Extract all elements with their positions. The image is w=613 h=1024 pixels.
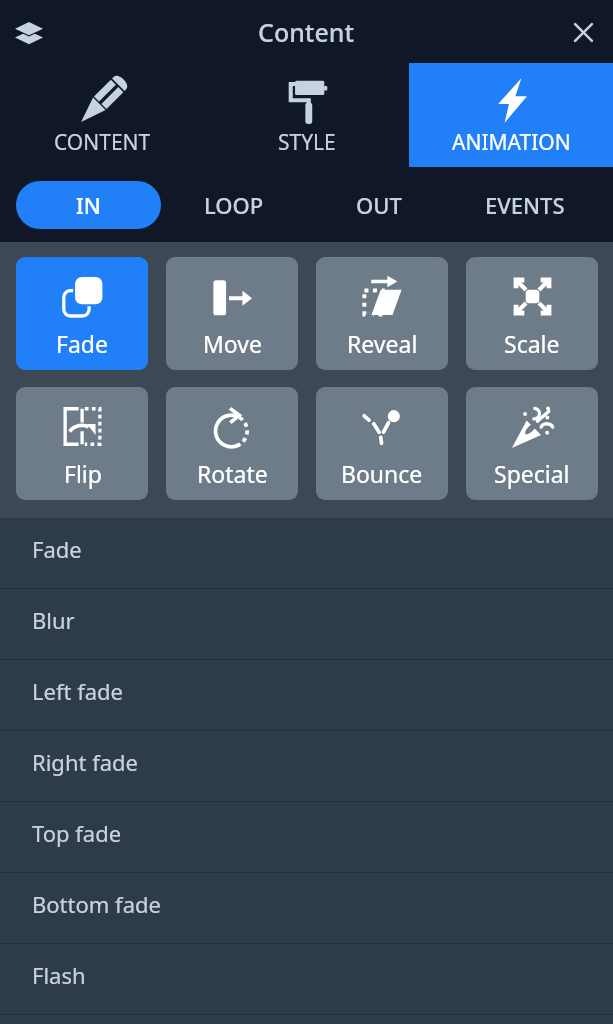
button[interactable]: Left fade: [0, 660, 613, 730]
staticText: Flash: [32, 960, 86, 990]
staticText: Rotate: [197, 458, 268, 489]
staticText: Fade: [56, 328, 108, 359]
button[interactable]: Flip: [16, 387, 148, 500]
staticText: Right fade: [32, 747, 138, 777]
staticText: Scale: [504, 328, 560, 359]
button[interactable]: IN: [16, 181, 161, 229]
button[interactable]: Scale: [466, 257, 598, 370]
staticText: IN: [76, 190, 101, 220]
staticText: OUT: [356, 190, 402, 220]
staticText: Special: [494, 458, 570, 489]
staticText: EVENTS: [485, 190, 565, 220]
staticText: Left fade: [32, 676, 124, 706]
staticText: STYLE: [278, 128, 336, 157]
button[interactable]: Layers: [5, 8, 53, 56]
button[interactable]: LOOP: [161, 181, 306, 229]
button[interactable]: Move: [166, 257, 298, 370]
button[interactable]: Blur: [0, 589, 613, 659]
button[interactable]: STYLE: [205, 63, 409, 167]
button[interactable]: Close: [559, 8, 607, 56]
staticText: LOOP: [204, 190, 264, 220]
staticText: Bounce: [341, 458, 423, 489]
button[interactable]: Bottom fade: [0, 873, 613, 943]
button[interactable]: Rotate: [166, 387, 298, 500]
staticText: Flip: [64, 458, 102, 489]
staticText: Bottom fade: [32, 889, 161, 919]
staticText: Blur: [32, 605, 75, 635]
button[interactable]: Reveal: [316, 257, 448, 370]
button[interactable]: Bounce: [316, 387, 448, 500]
button[interactable]: Flash: [0, 944, 613, 1014]
staticText: Move: [203, 328, 262, 359]
button[interactable]: Top fade: [0, 802, 613, 872]
staticText: Content: [258, 15, 355, 49]
staticText: Reveal: [347, 328, 418, 359]
staticText: Top fade: [32, 818, 122, 848]
button[interactable]: Fade: [0, 518, 613, 588]
button[interactable]: Right fade: [0, 731, 613, 801]
button[interactable]: OUT: [306, 181, 452, 229]
button[interactable]: CONTENT: [0, 63, 205, 167]
button[interactable]: Fade: [16, 257, 148, 370]
button[interactable]: EVENTS: [452, 181, 598, 229]
staticText: ANIMATION: [452, 128, 571, 157]
button[interactable]: Special: [466, 387, 598, 500]
button[interactable]: ANIMATION: [409, 63, 613, 167]
staticText: Fade: [32, 534, 82, 564]
staticText: CONTENT: [54, 128, 151, 157]
